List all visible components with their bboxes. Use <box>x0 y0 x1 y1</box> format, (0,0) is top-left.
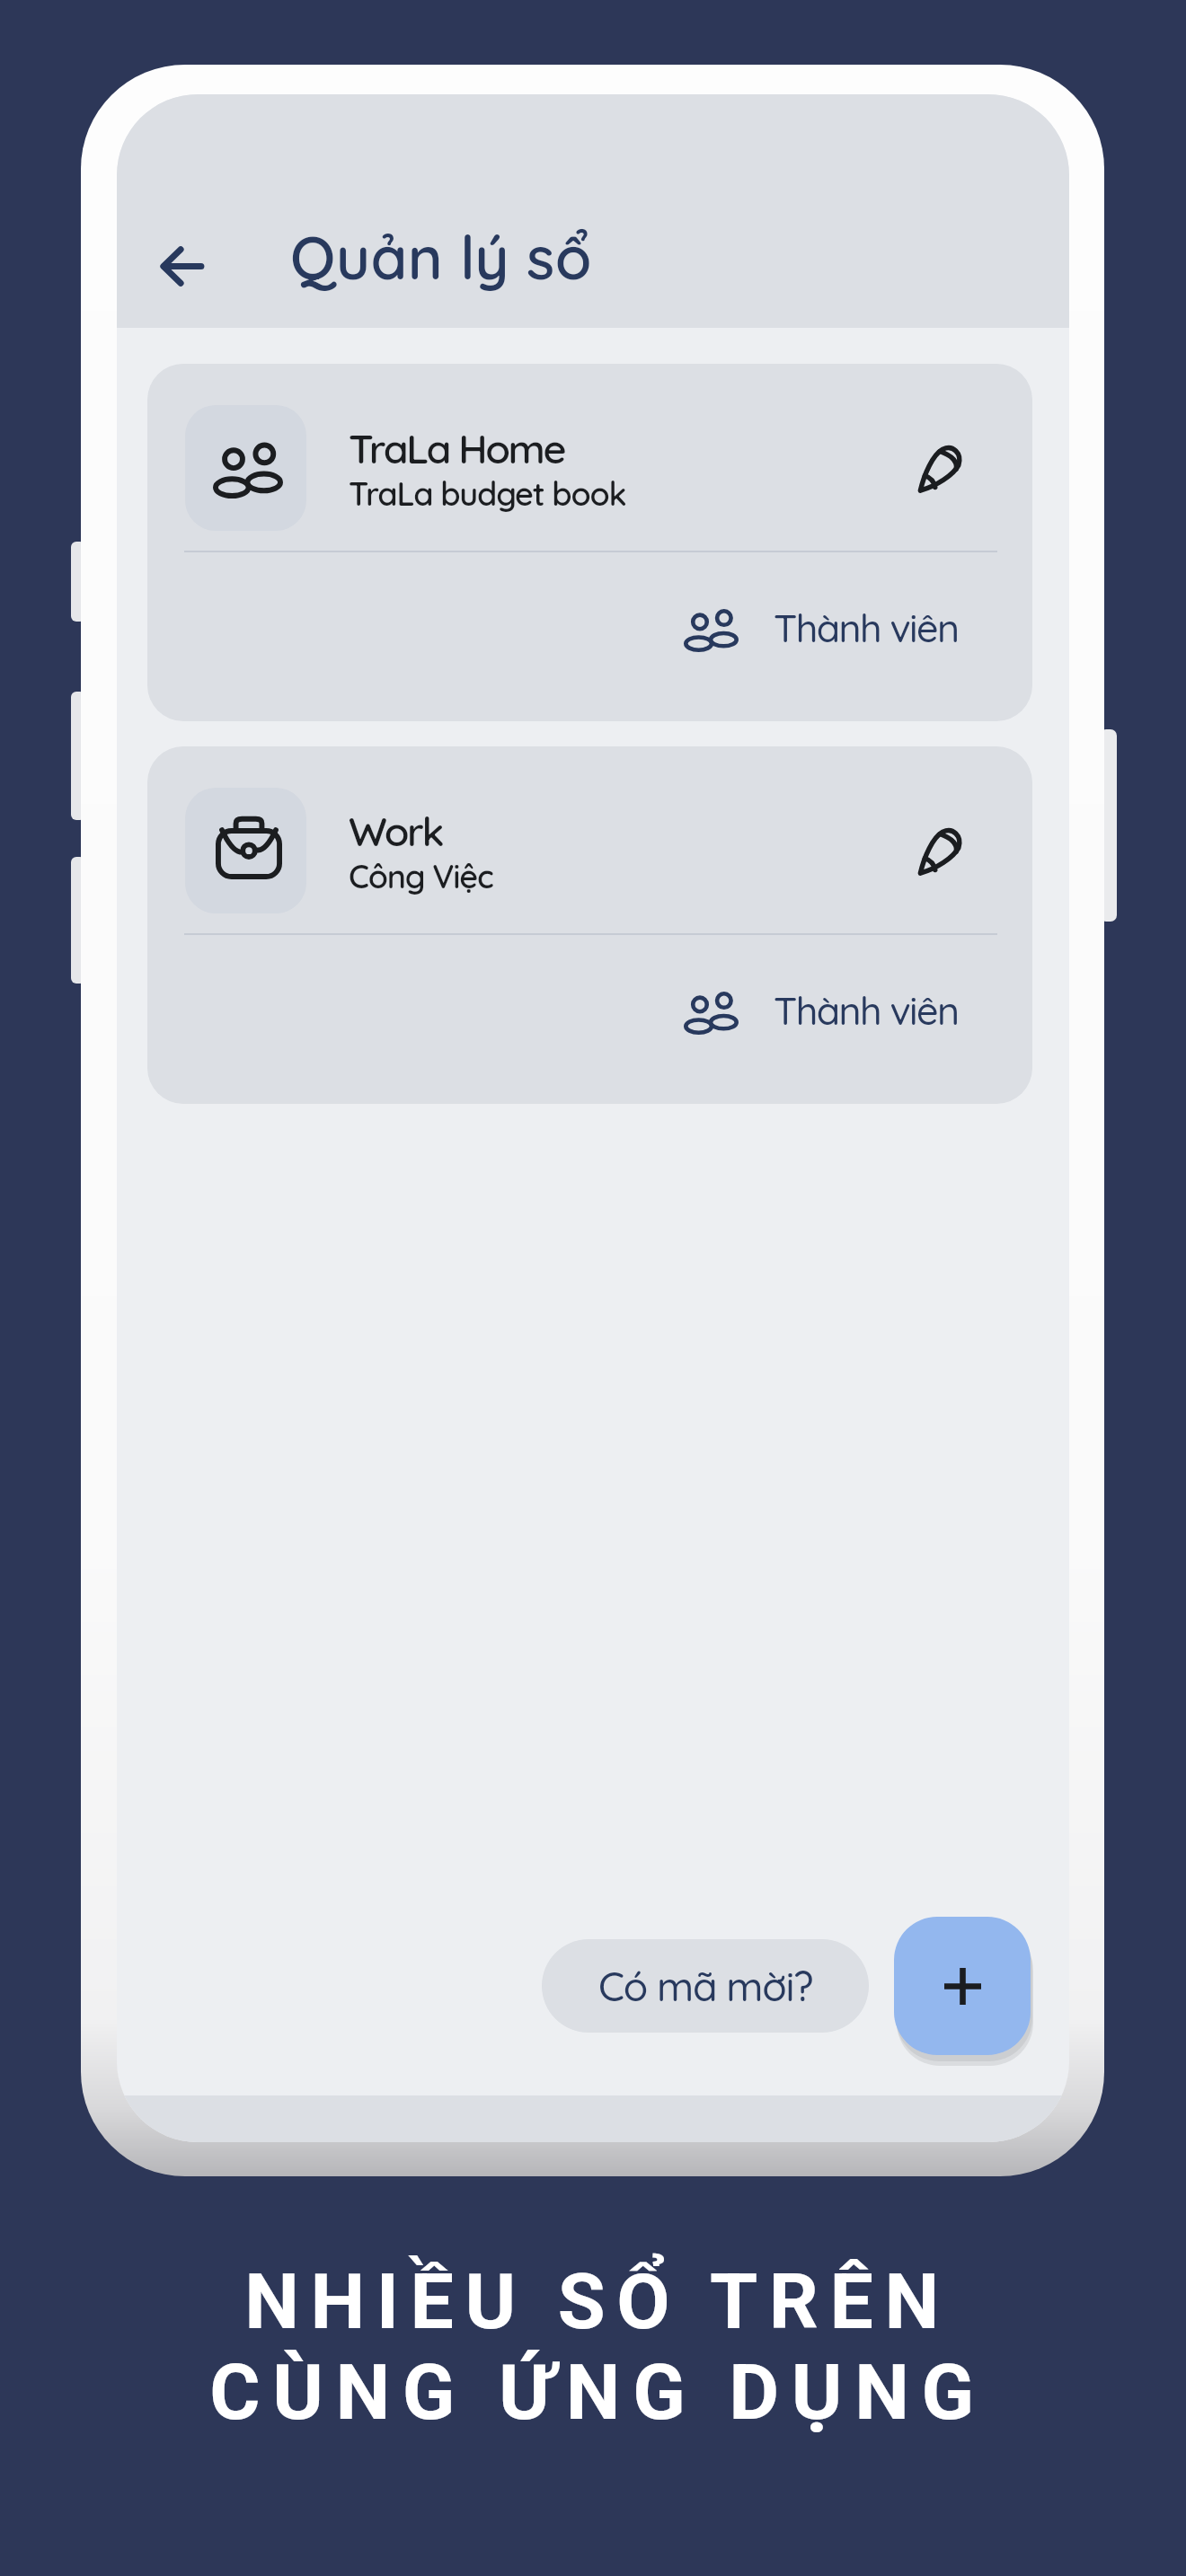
button[interactable]: Work <box>147 746 1032 1104</box>
staticText: NHIỀU SỔ TRÊN <box>244 2256 951 2347</box>
button[interactable]: Thành viên <box>684 604 959 656</box>
button[interactable]: Back <box>140 225 223 307</box>
staticText: CÙNG ỨNG DỤNG <box>209 2347 987 2438</box>
staticText: TraLa budget book <box>349 473 626 514</box>
button[interactable]: Thành viên <box>684 986 959 1038</box>
staticText: Quản lý sổ <box>290 220 592 295</box>
button[interactable]: TraLa Home <box>147 364 1032 721</box>
staticText: Có mã mời? <box>598 1961 813 2011</box>
staticText: TraLa Home <box>349 423 565 473</box>
button[interactable]: Edit <box>897 427 981 511</box>
staticText: Thành viên <box>774 986 959 1035</box>
button[interactable]: Có mã mời? <box>542 1939 869 2033</box>
staticText: Công Việc <box>349 856 493 896</box>
staticText: Thành viên <box>774 604 959 652</box>
button[interactable]: Edit <box>897 809 981 894</box>
button[interactable]: Add <box>894 1917 1031 2055</box>
staticText: Work <box>349 806 443 856</box>
